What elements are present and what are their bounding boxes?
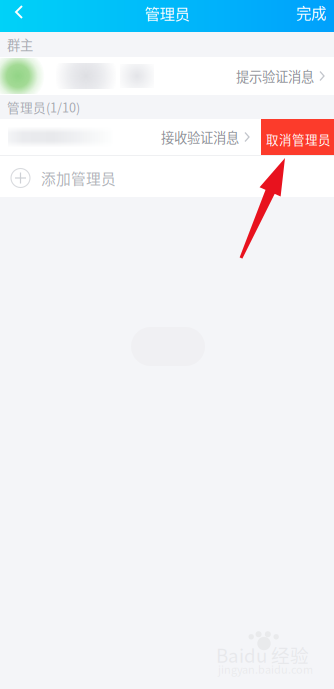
- staticText: Baidu 经验: [216, 641, 309, 668]
- staticText: 完成: [296, 1, 326, 23]
- button[interactable]: 完成: [284, 0, 334, 32]
- staticText: 管理员(1/10): [7, 98, 80, 116]
- staticText: 提示验证消息: [236, 66, 314, 86]
- button[interactable]: 取消管理员: [261, 119, 334, 155]
- staticText: 接收验证消息: [161, 127, 239, 147]
- button[interactable]: 添加管理员: [0, 155, 334, 197]
- staticText: 取消管理员: [266, 130, 331, 148]
- button[interactable]: 返回: [0, 0, 37, 32]
- staticText: 群主: [7, 35, 33, 54]
- staticText: 添加管理员: [41, 167, 116, 189]
- staticText: jingyan.baidu.com: [218, 661, 313, 677]
- button[interactable]: 接收验证消息: [161, 119, 261, 155]
- staticText: 管理员: [144, 2, 189, 24]
- button[interactable]: 提示验证消息: [0, 57, 334, 95]
